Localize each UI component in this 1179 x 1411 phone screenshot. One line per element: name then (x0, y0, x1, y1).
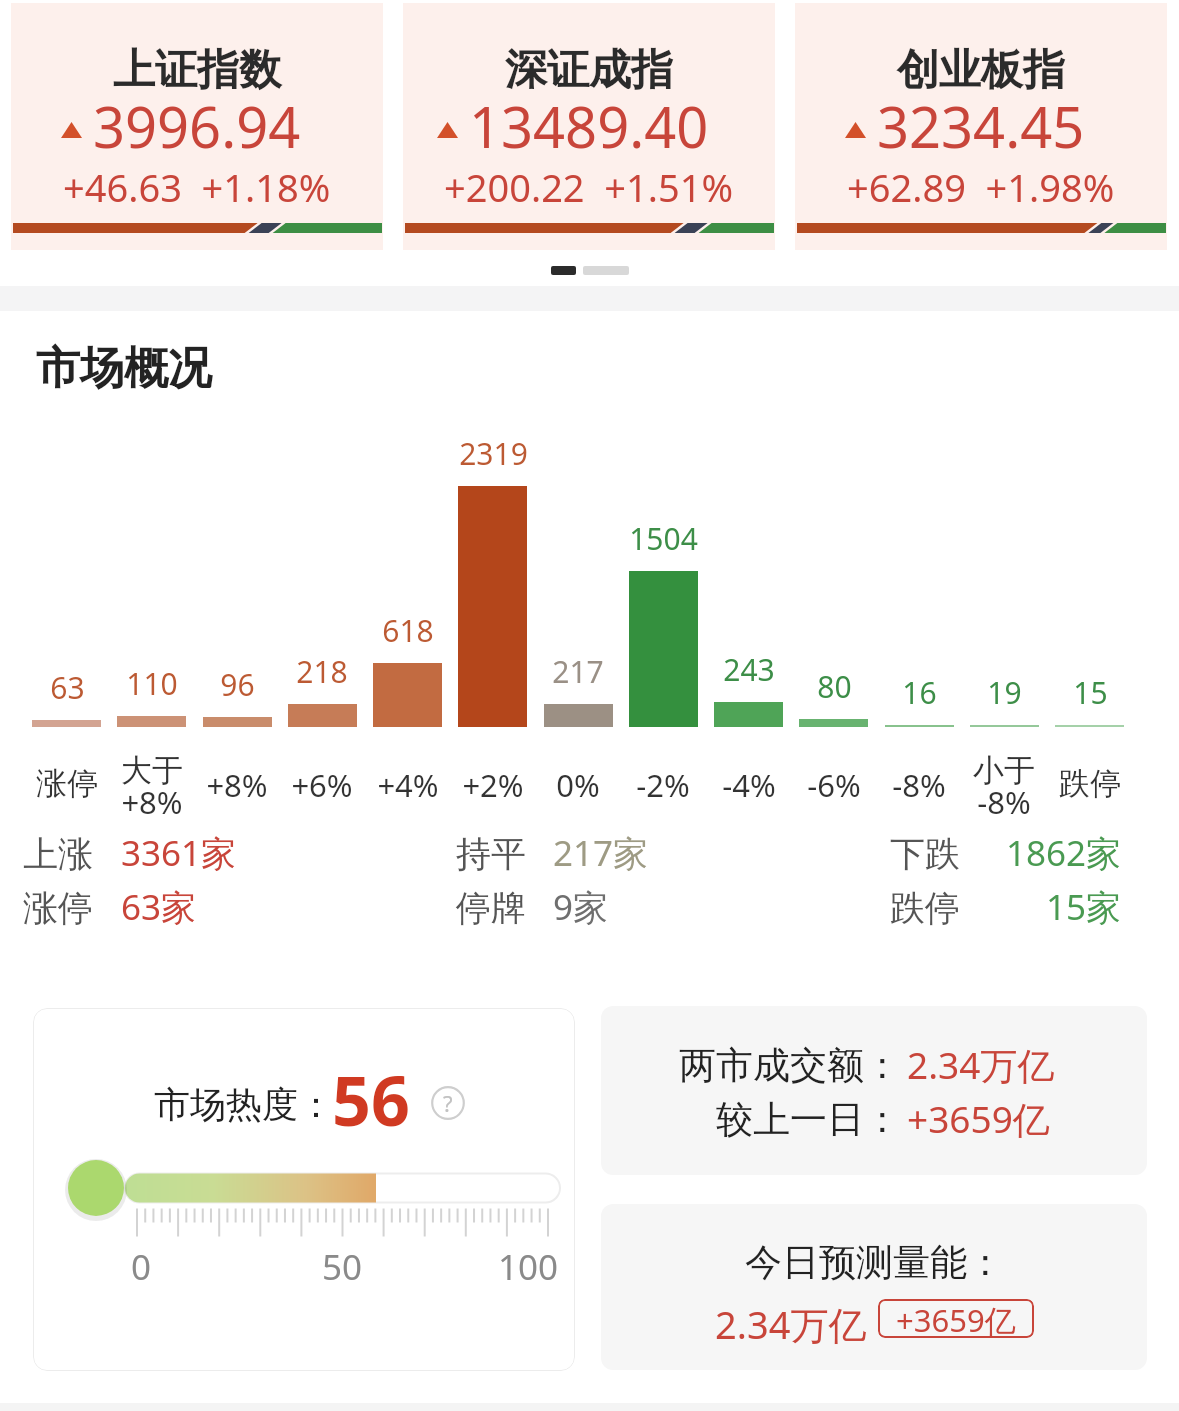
staticText: 96 (220, 664, 255, 705)
staticText: +3659亿 (907, 1093, 1050, 1144)
staticText: 大于 (121, 751, 183, 790)
staticText: 下跌 (890, 832, 960, 876)
staticText: 80 (817, 666, 852, 707)
staticText: 跌停 (890, 886, 960, 930)
staticText: +8% (206, 764, 268, 806)
staticText: 19 (987, 672, 1022, 713)
staticText: 涨停 (23, 886, 93, 930)
staticText: 创业板指 (897, 44, 1065, 97)
staticText: 1862家 (1006, 829, 1122, 877)
staticText: 2.34万亿 (715, 1298, 867, 1350)
staticText: 243 (723, 649, 775, 690)
staticText: 56 (332, 1053, 410, 1146)
staticText: 涨停 (36, 764, 98, 803)
staticText: 63家 (121, 883, 197, 931)
button[interactable]: 深证成指 (403, 3, 775, 250)
button[interactable]: 今日预测量能： (601, 1204, 1147, 1370)
staticText: 市场概况 (36, 341, 212, 396)
staticText: 1504 (629, 518, 698, 559)
staticText: ? (443, 1088, 453, 1118)
staticText: 上证指数 (113, 44, 281, 97)
staticText: 市场热度： (154, 1082, 334, 1127)
staticText: +62.89 +1.98% (847, 161, 1115, 213)
staticText: 小于 (973, 751, 1035, 790)
staticText: 100 (498, 1243, 559, 1291)
staticText: 今日预测量能： (745, 1239, 1004, 1286)
staticText: 2.34万亿 (907, 1039, 1055, 1090)
staticText: 9家 (553, 883, 609, 931)
staticText: 较上一日： (716, 1096, 901, 1143)
staticText: 3361家 (121, 829, 237, 877)
staticText: 15 (1073, 672, 1108, 713)
button[interactable]: 上证指数 (11, 3, 383, 250)
staticText: 16 (902, 672, 937, 713)
staticText: +200.22 +1.51% (444, 161, 734, 213)
staticText: 50 (322, 1243, 363, 1291)
button[interactable]: 两市成交额： (601, 1006, 1147, 1175)
staticText: -4% (722, 764, 776, 806)
button[interactable]: 第一页 (551, 266, 576, 275)
staticText: 跌停 (1059, 764, 1121, 803)
staticText: +46.63 +1.18% (63, 161, 331, 213)
staticText: 15家 (1046, 883, 1122, 931)
staticText: -8% (892, 764, 946, 806)
staticText: -6% (807, 764, 861, 806)
staticText: 618 (382, 610, 434, 651)
button[interactable]: 创业板指 (795, 3, 1167, 250)
staticText: 13489.40 (469, 88, 709, 164)
button[interactable]: 帮助 (431, 1086, 465, 1120)
staticText: +2% (462, 764, 524, 806)
staticText: 217 (552, 651, 604, 692)
staticText: 218 (296, 651, 348, 692)
staticText: -8% (977, 781, 1031, 823)
staticText: 0 (131, 1243, 152, 1291)
staticText: 上涨 (23, 832, 93, 876)
staticText: 停牌 (456, 886, 526, 930)
staticText: 3996.94 (93, 88, 301, 164)
staticText: 3234.45 (877, 88, 1085, 164)
staticText: 2319 (459, 433, 528, 474)
staticText: 持平 (456, 832, 526, 876)
staticText: -2% (636, 764, 690, 806)
staticText: 两市成交额： (679, 1042, 901, 1089)
staticText: +3659亿 (896, 1299, 1016, 1338)
staticText: +8% (121, 781, 183, 823)
staticText: 0% (556, 764, 600, 806)
staticText: +6% (291, 764, 353, 806)
staticText: 63 (50, 667, 85, 708)
staticText: 110 (126, 663, 178, 704)
staticText: 217家 (553, 829, 649, 877)
staticText: 深证成指 (505, 44, 673, 97)
staticText: +4% (377, 764, 439, 806)
button[interactable]: 市场热度： (33, 1008, 575, 1371)
